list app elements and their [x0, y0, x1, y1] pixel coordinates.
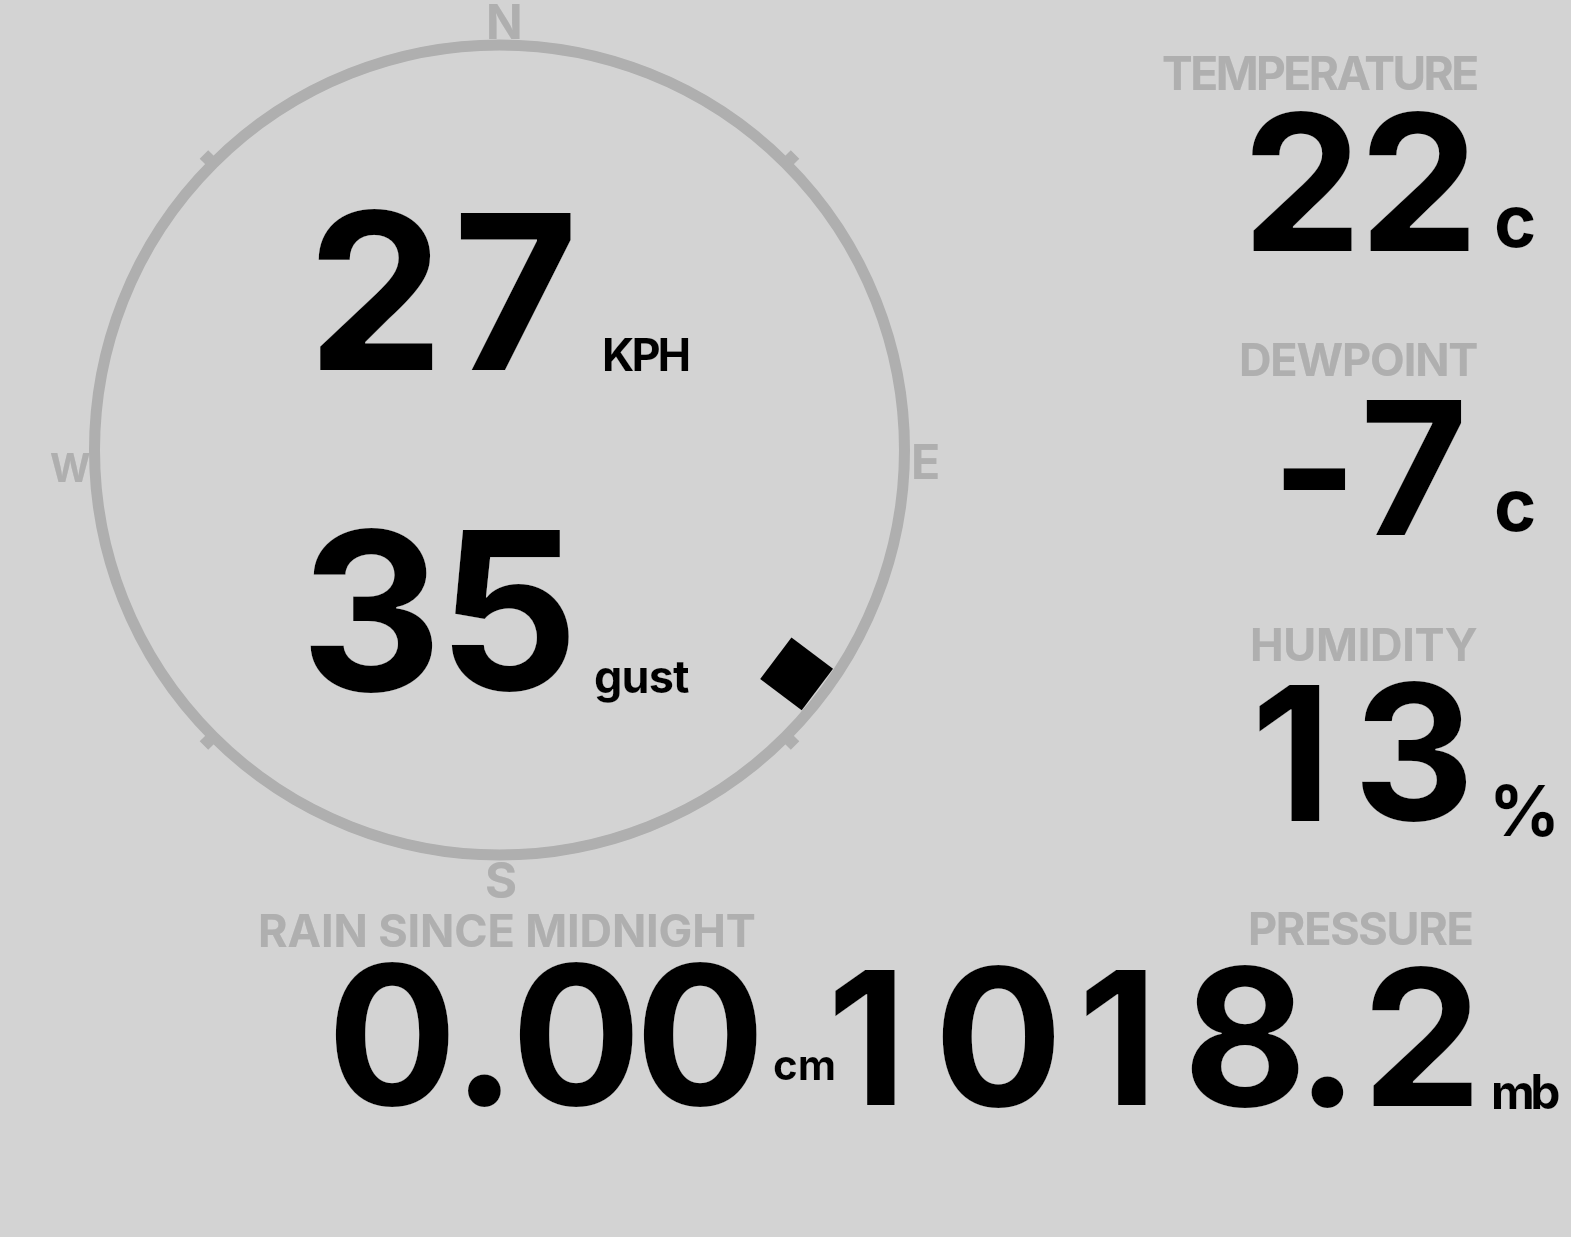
staticText: S [485, 851, 518, 910]
staticText: % [1489, 768, 1561, 853]
staticText: - [1271, 355, 1358, 579]
staticText: 1 [827, 926, 907, 1150]
other: Wind direction dial [0, 0, 1571, 1237]
staticText: KPH [602, 327, 689, 381]
staticText: mb [1491, 1062, 1556, 1120]
staticText: c [1494, 461, 1537, 548]
staticText: 7 [453, 161, 579, 422]
staticText: TEMPERATURE [1162, 45, 1477, 101]
staticText: E [911, 432, 941, 490]
staticText: gust [594, 649, 689, 703]
staticText: 0 [511, 918, 642, 1152]
staticText: 3 [300, 477, 443, 744]
staticText: 3 [1353, 637, 1475, 865]
staticText: RAIN SINCE MIDNIGHT [258, 903, 756, 957]
staticText: 0 [934, 921, 1063, 1152]
staticText: . [452, 917, 517, 1152]
staticText: 7 [1360, 355, 1468, 579]
staticText: 0 [635, 918, 766, 1152]
staticText: 2 [1359, 66, 1479, 296]
staticText: 2 [307, 159, 445, 422]
staticText: 2 [1362, 921, 1482, 1151]
staticText: c [1494, 177, 1537, 264]
staticText: 0 [327, 918, 458, 1152]
staticText: 5 [438, 477, 579, 744]
staticText: HUMIDITY [1250, 617, 1478, 671]
staticText: . [1296, 924, 1359, 1151]
staticText: N [486, 0, 523, 50]
staticText: 2 [1242, 66, 1362, 296]
staticText: cm [773, 1039, 837, 1090]
staticText: DEWPOINT [1239, 332, 1478, 386]
staticText: 1 [1078, 926, 1158, 1150]
staticText: 8 [1183, 921, 1308, 1152]
staticText: 1 [1251, 640, 1332, 866]
staticText: PRESSURE [1248, 901, 1473, 955]
staticText: W [50, 444, 91, 491]
